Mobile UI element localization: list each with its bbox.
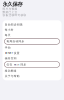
button[interactable]: 手动 [2,45,61,50]
button[interactable]: Server 设置 [2,50,61,56]
staticText: 永久保存 [2,1,22,8]
staticText: 储存空间 [5,57,17,60]
button[interactable]: 仅在 Wi-Fi 同步 [2,61,61,68]
staticText: 移动网络 [5,69,17,72]
button[interactable]: 自动同步间隔 [2,22,61,27]
staticText: 关于与帮助 [5,74,20,78]
staticText: 自动同步间隔 [5,23,23,26]
staticText: 每小时 [5,28,14,31]
staticText: 每周自动同步 [7,40,25,43]
staticText: 数据已上云 [2,10,17,14]
button[interactable]: 移动网络 [2,68,61,73]
button[interactable]: 每天 [2,32,61,38]
staticText: 设备迁移即可获取 [2,13,26,17]
button[interactable]: 关于与帮助 [2,73,61,79]
staticText: 每天 [5,33,11,37]
staticText: 照片与视频 [2,7,17,11]
staticText: 手动 [5,46,11,49]
button[interactable]: 每小时 [2,27,61,32]
staticText: 仅在 Wi-Fi 同步 [7,63,27,66]
button[interactable]: 每周自动同步 [2,38,61,45]
staticText: Server 设置 [5,51,20,55]
button[interactable]: 储存空间 [2,56,61,61]
